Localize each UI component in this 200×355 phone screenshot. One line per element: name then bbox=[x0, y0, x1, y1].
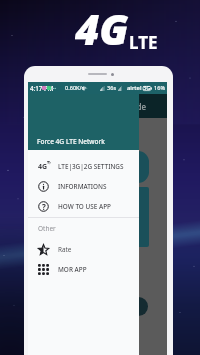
staticText: ? bbox=[42, 201, 46, 212]
button[interactable]: INFORMATIONS bbox=[28, 176, 139, 196]
staticText: HOW TO USE APP bbox=[58, 202, 111, 211]
staticText: LTE bbox=[129, 31, 158, 54]
staticText: MOR APP bbox=[58, 265, 87, 274]
staticText: airtel 3G bbox=[127, 84, 151, 92]
staticText: 36s bbox=[107, 84, 117, 92]
staticText: 4:17 PM bbox=[30, 84, 54, 92]
button[interactable]: ? bbox=[28, 196, 139, 216]
staticText: Force 4G LTE Only Mode bbox=[54, 101, 147, 112]
staticText: 16% bbox=[154, 84, 166, 92]
staticText: 0.60K/s bbox=[65, 84, 85, 92]
staticText: INFORMATIONS bbox=[58, 182, 107, 191]
staticText: LTE|3G|2G SETTINGS bbox=[58, 162, 124, 171]
staticText: 4G bbox=[75, 0, 129, 56]
button[interactable]: 4G bbox=[28, 156, 139, 176]
staticText: Other bbox=[38, 224, 56, 233]
staticText: 4G bbox=[38, 162, 48, 172]
staticText: Force 4G LTE Network bbox=[37, 137, 105, 146]
button[interactable]: MOR APP bbox=[28, 259, 139, 279]
button[interactable]: Rate bbox=[28, 239, 139, 259]
staticText: Rate bbox=[58, 245, 72, 254]
